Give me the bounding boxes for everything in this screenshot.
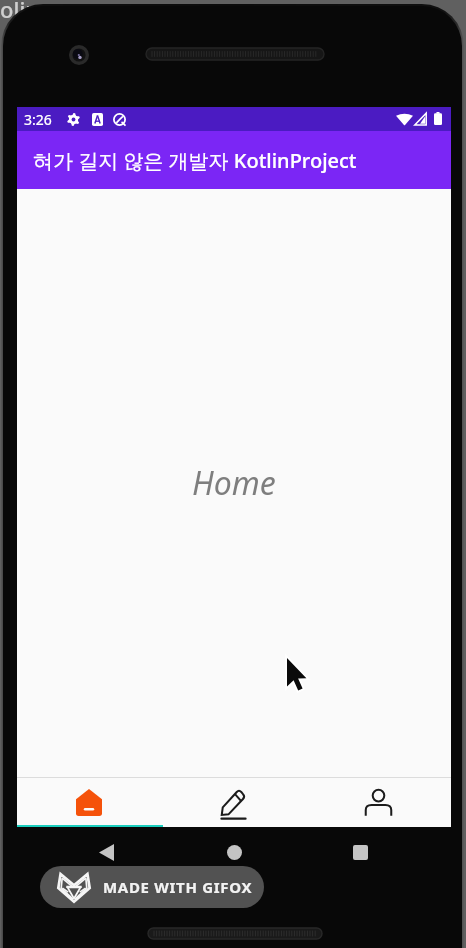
button[interactable]: Back [88, 838, 124, 866]
button[interactable]: Profile [306, 779, 451, 825]
staticText: 3:26 [24, 110, 52, 129]
button[interactable]: Create [161, 779, 306, 825]
staticText: olin [0, 0, 40, 24]
staticText: 혀가 길지 않은 개발자 KotlinProject [33, 147, 357, 174]
button[interactable]: MADE WITH GIFOX [40, 866, 264, 908]
button[interactable]: Home [17, 779, 161, 825]
staticText: MADE WITH GIFOX [103, 877, 253, 897]
staticText: Home [192, 461, 276, 505]
button[interactable]: Recents [342, 838, 378, 866]
button[interactable]: Home [216, 838, 252, 866]
